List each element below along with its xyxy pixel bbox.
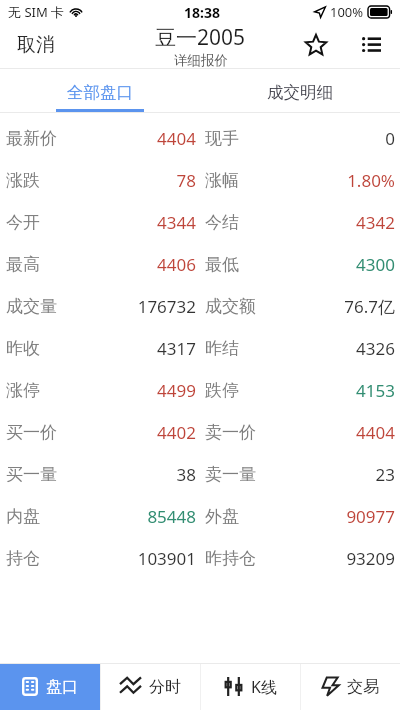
button[interactable]: 最高 <box>0 243 400 285</box>
staticText: 18:38 <box>184 3 220 22</box>
staticText: 盘口 <box>46 677 78 697</box>
staticText: 成交额 <box>205 296 256 317</box>
staticText: 外盘 <box>205 506 239 527</box>
button[interactable]: K线 <box>201 663 300 710</box>
staticText: 昨结 <box>205 338 239 359</box>
staticText: 交易 <box>347 677 379 697</box>
staticText: 93209 <box>256 547 395 570</box>
staticText: 103901 <box>40 547 196 570</box>
staticText: 1.80% <box>239 169 395 192</box>
staticText: 4406 <box>40 253 196 276</box>
staticText: 昨收 <box>6 338 40 359</box>
staticText: 23 <box>256 463 395 486</box>
staticText: 176732 <box>57 295 196 318</box>
staticText: 详细报价 <box>174 52 228 68</box>
button[interactable]: 分时 <box>101 663 200 710</box>
staticText: 成交量 <box>6 296 57 317</box>
button[interactable]: 列表 <box>351 24 391 64</box>
staticText: 78 <box>40 169 196 192</box>
button[interactable]: 内盘 <box>0 495 400 537</box>
staticText: 4344 <box>40 211 196 234</box>
button[interactable]: 买一价 <box>0 411 400 453</box>
staticText: 卖一量 <box>205 464 256 485</box>
staticText: 全部盘口 <box>67 82 133 103</box>
staticText: 取消 <box>17 33 55 57</box>
staticText: 最新价 <box>6 128 57 149</box>
button[interactable]: 今开 <box>0 201 400 243</box>
staticText: 4404 <box>57 127 196 150</box>
staticText: 买一量 <box>6 464 57 485</box>
staticText: 豆一2005 <box>155 23 246 52</box>
staticText: 成交明细 <box>267 82 333 103</box>
staticText: 76.7亿 <box>256 295 395 318</box>
staticText: 100% <box>330 3 364 21</box>
button[interactable]: 成交明细 <box>200 69 400 113</box>
staticText: 90977 <box>239 505 395 528</box>
button[interactable]: 成交量 <box>0 285 400 327</box>
button[interactable]: 取消 <box>0 24 72 69</box>
button[interactable]: 最新价 <box>0 117 400 159</box>
staticText: 卖一价 <box>205 422 256 443</box>
staticText: 今结 <box>205 212 239 233</box>
staticText: 涨跌 <box>6 170 40 191</box>
staticText: 4499 <box>40 379 196 402</box>
staticText: 4300 <box>239 253 395 276</box>
button[interactable]: 涨跌 <box>0 159 400 201</box>
button[interactable]: 持仓 <box>0 537 400 579</box>
staticText: 最高 <box>6 254 40 275</box>
staticText: 4402 <box>57 421 196 444</box>
staticText: 4153 <box>239 379 395 402</box>
staticText: 4404 <box>256 421 395 444</box>
staticText: 现手 <box>205 128 239 149</box>
staticText: 买一价 <box>6 422 57 443</box>
staticText: 最低 <box>205 254 239 275</box>
staticText: 涨停 <box>6 380 40 401</box>
button[interactable]: 昨收 <box>0 327 400 369</box>
staticText: 4317 <box>40 337 196 360</box>
staticText: 85448 <box>40 505 196 528</box>
button[interactable]: 涨停 <box>0 369 400 411</box>
staticText: 0 <box>239 127 395 150</box>
staticText: 4342 <box>239 211 395 234</box>
button[interactable]: 买一量 <box>0 453 400 495</box>
button[interactable]: 盘口 <box>0 663 100 710</box>
staticText: 内盘 <box>6 506 40 527</box>
staticText: 分时 <box>149 677 181 697</box>
staticText: K线 <box>251 676 277 698</box>
staticText: 今开 <box>6 212 40 233</box>
button[interactable]: 全部盘口 <box>0 69 200 113</box>
staticText: 涨幅 <box>205 170 239 191</box>
staticText: 无 SIM 卡 <box>8 3 65 21</box>
button[interactable]: 收藏 <box>296 25 336 65</box>
staticText: 持仓 <box>6 548 40 569</box>
staticText: 跌停 <box>205 380 239 401</box>
button[interactable]: 交易 <box>301 663 400 710</box>
staticText: 38 <box>57 463 196 486</box>
staticText: 昨持仓 <box>205 548 256 569</box>
staticText: 4326 <box>239 337 395 360</box>
